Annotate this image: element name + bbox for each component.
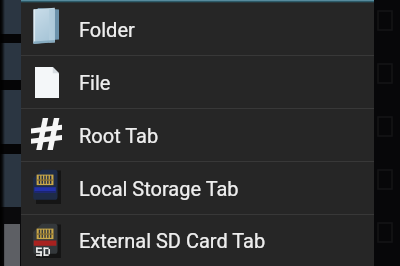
staticText: Root Tab xyxy=(79,124,159,147)
button[interactable]: Folder xyxy=(21,3,374,55)
staticText: File xyxy=(79,71,111,94)
staticText: Local Storage Tab xyxy=(79,177,239,200)
button[interactable]: External SD Card Tab xyxy=(21,215,374,266)
staticText: Folder xyxy=(79,18,135,41)
staticText: External SD Card Tab xyxy=(79,229,266,252)
button[interactable]: Local Storage Tab xyxy=(21,162,374,214)
button[interactable]: File xyxy=(21,56,374,108)
button[interactable]: Root Tab xyxy=(21,109,374,161)
